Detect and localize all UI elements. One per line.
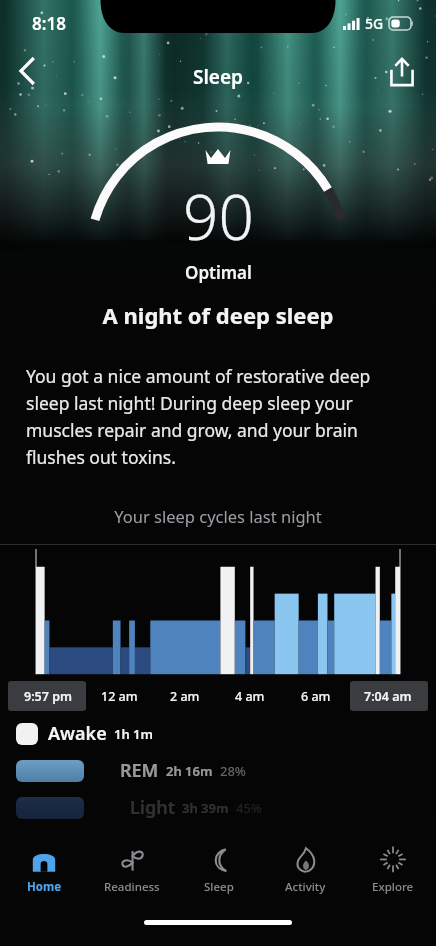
staticText: 28% xyxy=(220,762,246,780)
staticText: 2 am xyxy=(170,688,200,705)
staticText: Explore xyxy=(372,879,414,895)
staticText: You got a nice amount of restorative dee… xyxy=(26,364,410,469)
staticText: 90 xyxy=(183,174,254,258)
staticText: 1h 1m xyxy=(114,725,154,743)
staticText: Sleep xyxy=(204,879,234,895)
button[interactable]: Activity xyxy=(262,836,349,895)
button[interactable]: Home xyxy=(0,836,88,895)
staticText: Home xyxy=(27,879,62,895)
staticText: Awake xyxy=(48,721,107,746)
staticText: 7:04 am xyxy=(364,688,412,705)
button[interactable]: Light xyxy=(0,793,436,822)
staticText: 45% xyxy=(236,799,262,817)
button[interactable]: Sleep xyxy=(175,836,262,895)
button[interactable]: Share xyxy=(378,48,426,96)
staticText: 2h 16m xyxy=(166,762,213,780)
staticText: Optimal xyxy=(185,261,252,284)
button[interactable]: Readiness xyxy=(88,836,175,895)
staticText: 12 am xyxy=(101,688,138,705)
staticText: REM xyxy=(120,758,159,783)
staticText: 6 am xyxy=(301,688,331,705)
staticText: Your sleep cycles last night xyxy=(0,505,436,527)
staticText: 8:18 xyxy=(32,12,66,35)
staticText: Activity xyxy=(285,879,326,895)
staticText: 5G xyxy=(365,14,384,33)
button[interactable]: Explore xyxy=(349,836,436,895)
staticText: Sleep xyxy=(193,64,243,90)
staticText: Readiness xyxy=(104,879,160,895)
button[interactable]: REM xyxy=(0,756,436,785)
button[interactable]: Back xyxy=(4,48,50,94)
staticText: 3h 39m xyxy=(182,799,229,817)
staticText: 9:57 pm xyxy=(24,688,72,705)
staticText: 4 am xyxy=(235,688,265,705)
button[interactable]: Awake xyxy=(0,719,436,748)
staticText: Light xyxy=(130,795,175,820)
staticText: A night of deep sleep xyxy=(26,300,410,330)
